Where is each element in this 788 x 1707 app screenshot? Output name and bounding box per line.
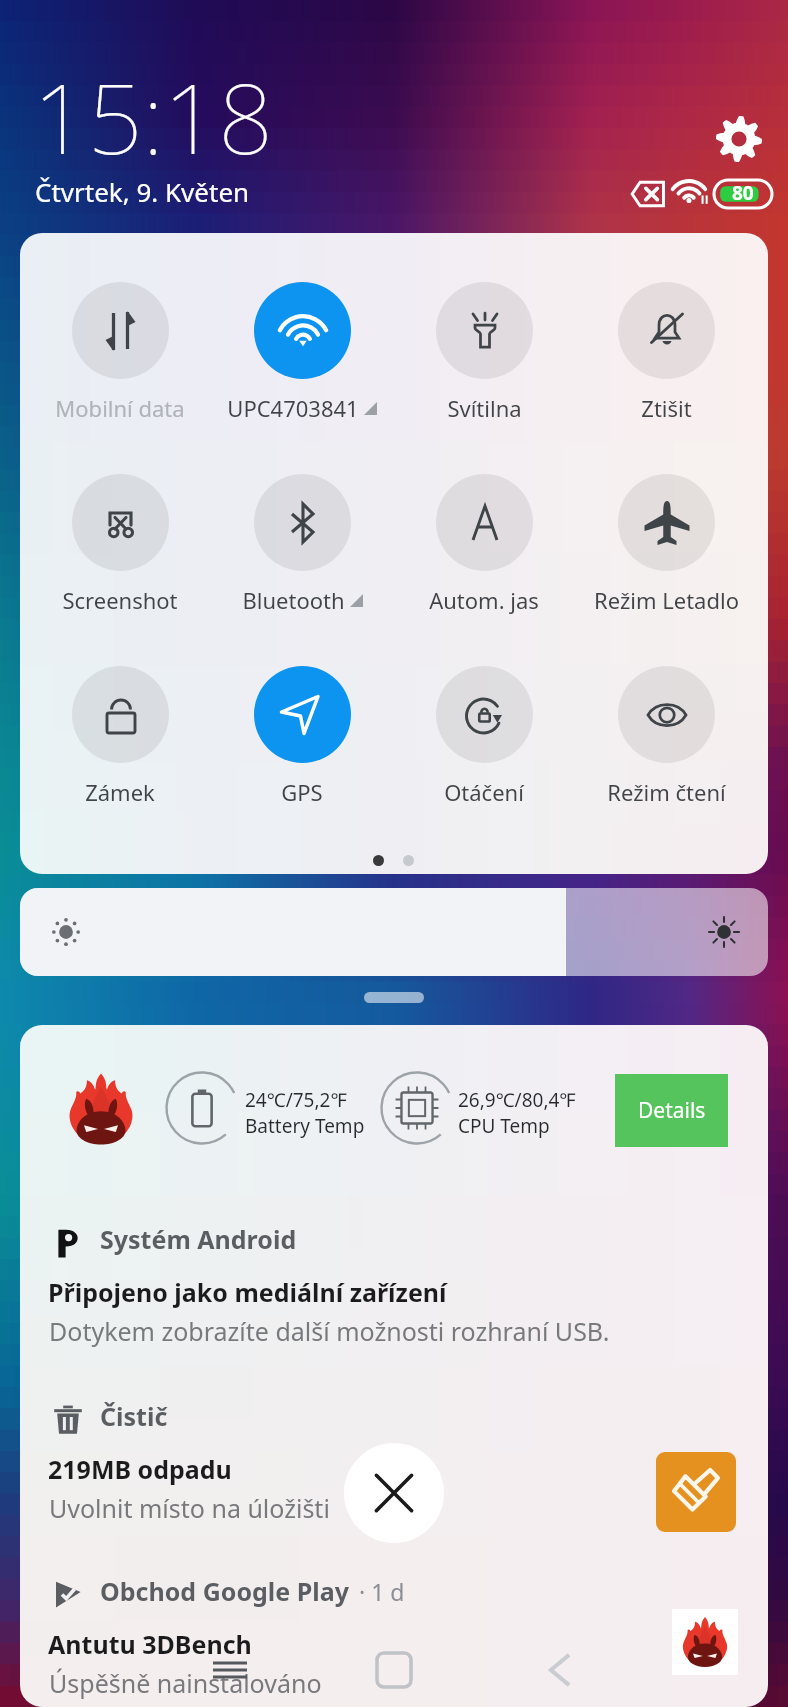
- staticText: Details: [638, 1096, 706, 1125]
- button[interactable]: Details: [615, 1074, 728, 1147]
- staticText: Bluetooth: [242, 585, 345, 615]
- staticText: 26,9℃/80,4℉: [458, 1087, 576, 1113]
- staticText: Čtvrtek, 9. Květen: [35, 174, 250, 209]
- staticText: Obchod Google Play: [100, 1574, 349, 1608]
- staticText: CPU Temp: [458, 1113, 550, 1139]
- button[interactable]: UPC4703841: [211, 282, 393, 423]
- staticText: 219MB odpadu: [48, 1452, 232, 1486]
- button[interactable]: Autom. jas: [393, 474, 575, 615]
- staticText: Zámek: [85, 777, 155, 807]
- button[interactable]: Systém Android: [20, 1228, 768, 1396]
- staticText: Čistič: [100, 1399, 168, 1433]
- staticText: GPS: [281, 777, 323, 807]
- button[interactable]: Režim čtení: [575, 666, 757, 807]
- staticText: 15:18: [33, 51, 273, 182]
- button[interactable]: Zámek: [29, 666, 211, 807]
- button[interactable]: Čistič: [20, 1405, 768, 1573]
- button[interactable]: Otáčení: [393, 666, 575, 807]
- staticText: Otáčení: [444, 777, 524, 807]
- button[interactable]: Svítilna: [393, 282, 575, 423]
- button[interactable]: Back: [510, 1640, 610, 1700]
- staticText: · 1 d: [359, 1576, 405, 1607]
- staticText: Úspěšně nainstalováno: [49, 1666, 322, 1700]
- button[interactable]: Settings: [716, 116, 762, 162]
- button[interactable]: Ztišit: [575, 282, 757, 423]
- staticText: Připojeno jako mediální zařízení: [48, 1275, 447, 1309]
- staticText: Battery Temp: [245, 1113, 365, 1139]
- button[interactable]: Mobilní data: [29, 282, 211, 423]
- staticText: 24℃/75,2℉: [245, 1087, 348, 1113]
- staticText: Ztišit: [641, 393, 692, 423]
- button[interactable]: Bluetooth: [211, 474, 393, 615]
- button[interactable]: Recents: [180, 1640, 280, 1700]
- button[interactable]: GPS: [211, 666, 393, 807]
- staticText: Mobilní data: [55, 393, 185, 423]
- staticText: Režim Letadlo: [594, 585, 739, 615]
- staticText: Uvolnit místo na úložišti: [49, 1491, 330, 1525]
- button[interactable]: 24℃/75,2℉: [20, 1025, 768, 1190]
- button[interactable]: Režim Letadlo: [575, 474, 757, 615]
- staticText: UPC4703841: [227, 393, 359, 423]
- staticText: Systém Android: [100, 1222, 297, 1256]
- button[interactable]: Clean: [656, 1452, 736, 1532]
- button[interactable]: Home: [344, 1640, 444, 1700]
- staticText: Antutu 3DBench: [48, 1627, 252, 1661]
- button[interactable]: Screenshot: [29, 474, 211, 615]
- button[interactable]: Close notifications: [344, 1443, 444, 1543]
- staticText: Autom. jas: [429, 585, 539, 615]
- staticText: Svítilna: [447, 393, 522, 423]
- staticText: 80: [732, 180, 754, 206]
- staticText: Režim čtení: [607, 777, 726, 807]
- button[interactable]: Brightness: [20, 888, 768, 976]
- staticText: Dotykem zobrazíte další možnosti rozhran…: [49, 1314, 610, 1348]
- button[interactable]: Obchod Google Play: [20, 1580, 768, 1707]
- staticText: Screenshot: [62, 585, 178, 615]
